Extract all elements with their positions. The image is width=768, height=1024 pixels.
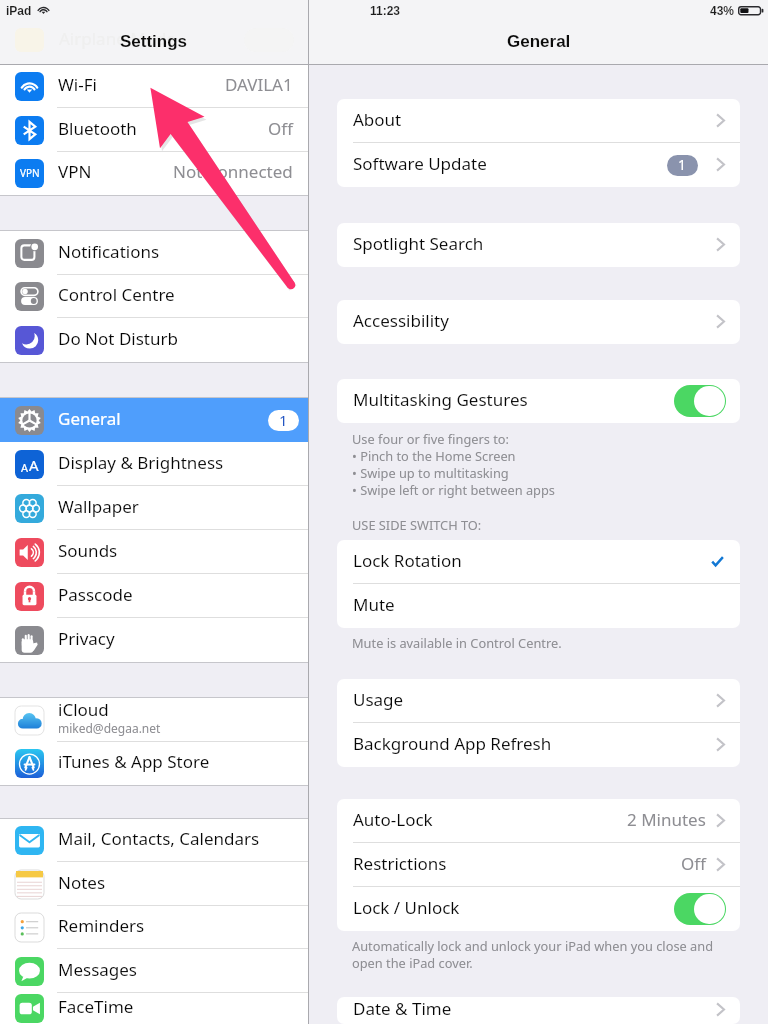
button[interactable]: Notes (0, 862, 308, 906)
button[interactable]: Passcode (0, 574, 308, 618)
staticText: General (58, 407, 268, 430)
staticText: Background App Refresh (353, 732, 552, 755)
staticText: Mail, Contacts, Calendars (58, 827, 293, 850)
button[interactable]: Multitasking Gestures (337, 379, 740, 423)
button[interactable]: iCloud (0, 698, 308, 742)
button[interactable]: Reminders (0, 906, 308, 949)
button[interactable]: Do Not Disturb (0, 318, 308, 362)
staticText: iCloud (58, 698, 109, 721)
staticText: Off (681, 852, 706, 875)
button[interactable]: About (337, 99, 740, 143)
staticText: 43% (710, 4, 735, 17)
staticText: Not Connected (173, 160, 293, 183)
staticText: A (21, 460, 29, 475)
staticText: 2 Minutes (627, 808, 706, 831)
staticText: Reminders (58, 914, 293, 937)
staticText: 1 (678, 155, 687, 174)
staticText: Settings (120, 32, 188, 51)
staticText: Automatically lock and unlock your iPad … (352, 937, 714, 971)
staticText: Lock Rotation (353, 549, 462, 572)
staticText: Do Not Disturb (58, 327, 293, 350)
button[interactable]: Auto-Lock (337, 799, 740, 843)
button[interactable]: Privacy (0, 618, 308, 662)
staticText: Notes (58, 871, 293, 894)
staticText: Software Update (353, 152, 487, 175)
staticText: A (29, 455, 39, 475)
button[interactable]: VPN (0, 152, 308, 195)
button[interactable]: Notifications (0, 231, 308, 275)
staticText: General (507, 32, 571, 51)
staticText: Messages (58, 958, 293, 981)
button[interactable]: Bluetooth (0, 108, 308, 152)
staticText: Usage (353, 688, 404, 711)
button[interactable]: Mute (337, 584, 740, 628)
staticText: FaceTime (58, 995, 293, 1018)
staticText: Mute (353, 593, 395, 616)
staticText: Notifications (58, 240, 293, 263)
button[interactable]: FaceTime (0, 993, 308, 1024)
staticText: About (353, 108, 402, 131)
button[interactable]: Lock Rotation (337, 540, 740, 584)
staticText: Display & Brightness (58, 451, 293, 474)
staticText: Spotlight Search (353, 232, 484, 255)
button[interactable]: Spotlight Search (337, 223, 740, 267)
staticText: Accessibility (353, 309, 449, 332)
staticText: Restrictions (353, 852, 447, 875)
button[interactable]: Usage (337, 679, 740, 723)
button[interactable]: Messages (0, 949, 308, 993)
button[interactable]: Control Centre (0, 275, 308, 318)
staticText: Date & Time (353, 997, 452, 1020)
button[interactable]: Sounds (0, 530, 308, 574)
staticText: Auto-Lock (353, 808, 433, 831)
staticText: Use four or five fingers to: • Pinch to … (352, 430, 555, 498)
staticText: Sounds (58, 539, 293, 562)
staticText: 11:23 (370, 4, 401, 17)
button[interactable]: Wi-Fi (0, 65, 308, 108)
staticText: Mute is available in Control Centre. (352, 634, 562, 651)
button[interactable]: Accessibility (337, 300, 740, 344)
staticText: miked@degaa.net (58, 720, 161, 736)
staticText: Passcode (58, 583, 293, 606)
button[interactable]: Lock / Unlock (337, 887, 740, 931)
staticText: 1 (279, 410, 288, 430)
staticText: VPN (20, 166, 40, 180)
button[interactable]: iTunes & App Store (0, 742, 308, 785)
staticText: Privacy (58, 627, 293, 650)
staticText: Multitasking Gestures (353, 388, 528, 411)
staticText: Wallpaper (58, 495, 293, 518)
staticText: DAVILA1 (225, 73, 293, 96)
staticText: Airplane Mode (59, 27, 176, 50)
staticText: iTunes & App Store (58, 750, 293, 773)
staticText: Off (268, 117, 293, 140)
button[interactable]: Background App Refresh (337, 723, 740, 767)
button[interactable]: A (0, 442, 308, 486)
other: Annotation arrow (0, 0, 768, 1024)
staticText: Control Centre (58, 283, 293, 306)
button[interactable]: Date & Time (337, 997, 740, 1024)
button[interactable]: Wallpaper (0, 486, 308, 530)
button[interactable]: Restrictions (337, 843, 740, 887)
staticText: Lock / Unlock (353, 896, 460, 919)
staticText: USE SIDE SWITCH TO: (352, 516, 482, 533)
staticText: VPN (58, 160, 173, 183)
staticText: Bluetooth (58, 117, 268, 140)
button[interactable]: Software Update (337, 143, 740, 187)
staticText: iPad (6, 4, 32, 17)
button[interactable]: General (0, 398, 308, 442)
staticText: Wi-Fi (58, 73, 225, 96)
button[interactable]: Mail, Contacts, Calendars (0, 819, 308, 862)
